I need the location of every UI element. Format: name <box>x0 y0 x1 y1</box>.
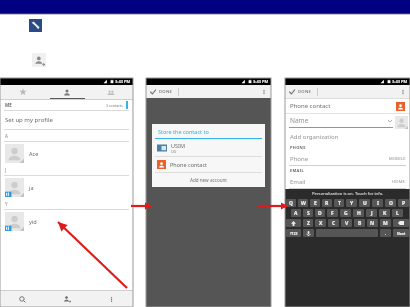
button[interactable]: ?123 <box>286 229 301 237</box>
button[interactable]: V <box>341 219 352 227</box>
staticText: N <box>370 220 375 227</box>
button[interactable]: G <box>340 209 351 217</box>
staticText: E <box>314 200 317 207</box>
staticText: Ace <box>29 150 39 157</box>
staticText: B <box>358 220 362 227</box>
staticText: 3 contacts <box>106 103 123 108</box>
button[interactable]: D <box>315 209 325 217</box>
staticText: O <box>389 200 393 207</box>
button[interactable]: H <box>353 209 364 217</box>
staticText: P <box>402 200 406 207</box>
button[interactable]: N <box>367 219 378 227</box>
button[interactable]: X <box>315 219 326 227</box>
staticText: ja <box>29 184 34 191</box>
staticText: 3:43 PM <box>115 79 131 84</box>
staticText: Name <box>290 116 309 125</box>
button[interactable]: Voice input <box>303 229 314 237</box>
staticText: C <box>332 220 336 227</box>
button[interactable]: R <box>322 199 332 207</box>
staticText: A <box>5 133 8 139</box>
button[interactable]: O <box>385 199 396 207</box>
staticText: G <box>344 210 348 217</box>
button[interactable]: E <box>310 199 320 207</box>
button[interactable]: Email <box>285 175 410 189</box>
button[interactable]: P <box>398 199 409 207</box>
button[interactable]: S <box>303 209 313 217</box>
button[interactable]: More options <box>398 87 408 97</box>
staticText: Set up my profile <box>5 116 53 124</box>
staticText: . <box>385 230 387 236</box>
button[interactable]: More options <box>259 87 269 97</box>
staticText: Phone <box>290 155 309 163</box>
staticText: DONE <box>298 89 312 95</box>
button[interactable]: K <box>379 209 390 217</box>
button[interactable]: M <box>380 219 391 227</box>
staticText: U <box>363 200 367 207</box>
button[interactable]: Add new account <box>152 173 265 187</box>
button[interactable]: A <box>291 209 301 217</box>
button[interactable]: Groups <box>89 85 133 99</box>
staticText: M <box>383 220 388 227</box>
staticText: Phone contact <box>290 102 331 110</box>
button[interactable]: Z <box>303 219 313 227</box>
button[interactable]: B <box>354 219 365 227</box>
button[interactable]: F <box>327 209 338 217</box>
button[interactable]: More options <box>89 291 133 307</box>
button[interactable]: yid <box>0 210 133 232</box>
staticText: ?123 <box>290 231 298 236</box>
staticText: Next <box>397 231 406 236</box>
staticText: Email <box>290 178 306 186</box>
staticText: X <box>319 220 323 227</box>
button[interactable]: ja <box>0 176 133 198</box>
button[interactable]: Phone contact <box>152 157 265 172</box>
staticText: Add organization <box>290 133 339 141</box>
staticText: K <box>383 210 387 217</box>
staticText: ME <box>5 102 12 108</box>
staticText: Personalization is on. Touch for info. <box>312 191 384 197</box>
button[interactable]: Add organization <box>290 130 410 143</box>
staticText: Q <box>289 200 293 207</box>
staticText: 3:43 PM <box>253 79 269 84</box>
button[interactable]: Add contact <box>45 291 89 307</box>
button[interactable]: Phone <box>285 152 410 166</box>
button[interactable]: Phone app <box>29 19 42 32</box>
button[interactable]: L <box>392 209 403 217</box>
staticText: A <box>294 210 298 217</box>
staticText: T <box>338 200 341 207</box>
button[interactable]: Y <box>346 199 357 207</box>
button[interactable]: . <box>380 229 391 237</box>
staticText: Y <box>350 200 354 207</box>
button[interactable]: C <box>328 219 339 227</box>
staticText: H <box>357 210 361 217</box>
button[interactable]: Add contact <box>32 53 46 67</box>
staticText: L <box>396 210 399 217</box>
button[interactable]: Contacts <box>45 85 89 99</box>
staticText: Store the contact to <box>158 128 209 135</box>
button[interactable]: W <box>298 199 308 207</box>
button[interactable]: Shift <box>286 219 301 227</box>
button[interactable]: Search <box>0 291 45 307</box>
staticText: D <box>318 210 322 217</box>
staticText: EMAIL <box>290 168 305 173</box>
staticText: DONE <box>159 89 173 95</box>
button[interactable]: J <box>366 209 377 217</box>
button[interactable]: Q <box>286 199 296 207</box>
staticText: HOME <box>392 179 406 184</box>
button[interactable]: Favorites <box>0 85 45 99</box>
staticText: I <box>377 200 379 207</box>
staticText: J <box>5 167 7 173</box>
button[interactable]: Set up my profile <box>5 111 133 129</box>
button[interactable]: U <box>359 199 370 207</box>
staticText: 3:43 PM <box>392 79 408 84</box>
staticText: Z <box>307 220 310 227</box>
button[interactable]: Next <box>393 229 409 237</box>
button[interactable]: USIM <box>152 139 265 156</box>
button[interactable]: Ace <box>0 142 133 164</box>
staticText: yid <box>29 218 37 225</box>
button[interactable]: I <box>372 199 383 207</box>
button[interactable]: T <box>334 199 344 207</box>
button[interactable]: Backspace <box>393 219 409 227</box>
button[interactable]: Phone contact <box>290 99 405 113</box>
